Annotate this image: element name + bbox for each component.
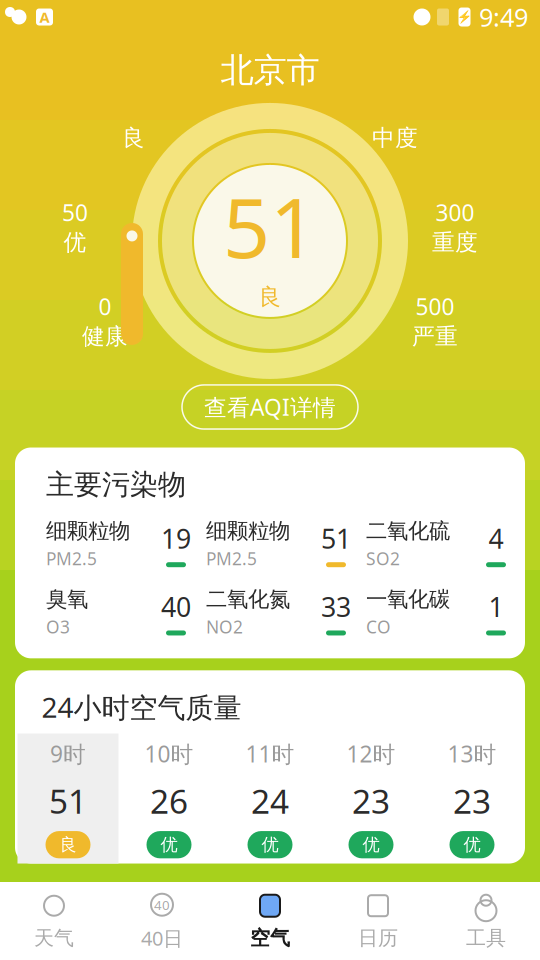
staticText: 26	[150, 779, 188, 823]
staticText: 主要污染物	[46, 467, 186, 502]
staticText: 优	[261, 834, 278, 855]
staticText: CO	[366, 615, 391, 638]
staticText: 空气	[250, 926, 290, 950]
staticText: 优	[63, 229, 86, 256]
staticText: 0	[98, 291, 111, 322]
staticText: 一氧化碳	[366, 586, 450, 612]
staticText: 51	[223, 171, 317, 281]
staticText: 24	[251, 779, 289, 823]
staticText: 良	[122, 124, 145, 152]
staticText: 优	[160, 834, 177, 855]
staticText: 10时	[144, 739, 193, 769]
staticText: ⚡	[457, 10, 472, 24]
staticText: 51	[321, 521, 351, 556]
button[interactable]: 工具	[432, 884, 540, 958]
staticText: 良	[258, 283, 281, 311]
staticText: 良	[59, 834, 76, 855]
staticText: 查看AQI详情	[204, 392, 336, 422]
button[interactable]: 天气	[0, 884, 108, 958]
staticText: 9:49	[479, 0, 528, 34]
staticText: 300	[435, 197, 474, 228]
staticText: 33	[321, 589, 351, 624]
staticText: 500	[415, 291, 454, 322]
staticText: 细颗粒物	[46, 518, 130, 544]
button[interactable]: 空气	[216, 884, 324, 958]
staticText: A	[39, 7, 49, 27]
staticText: 51	[49, 779, 87, 823]
staticText: 二氧化硫	[366, 518, 450, 544]
staticText: 4	[488, 521, 503, 556]
staticText: O3	[46, 615, 70, 638]
staticText: 11时	[245, 739, 294, 769]
staticText: 23	[453, 779, 491, 823]
staticText: 日历	[358, 926, 398, 950]
staticText: PM2.5	[206, 547, 257, 570]
staticText: PM2.5	[46, 547, 97, 570]
staticText: 重度	[432, 229, 478, 256]
staticText: 12时	[346, 739, 395, 769]
staticText: 健康	[82, 323, 128, 350]
staticText: NO2	[206, 615, 243, 638]
staticText: 优	[362, 834, 379, 855]
staticText: 优	[463, 834, 480, 855]
staticText: 23	[352, 779, 390, 823]
staticText: 24小时空气质量	[41, 688, 241, 725]
staticText: 40	[161, 589, 191, 624]
staticText: 9时	[50, 739, 86, 769]
staticText: 19	[161, 521, 191, 556]
staticText: 严重	[412, 323, 458, 350]
staticText: 天气	[34, 926, 74, 950]
staticText: 二氧化氮	[206, 586, 290, 612]
staticText: 40日	[141, 925, 183, 951]
staticText: 细颗粒物	[206, 518, 290, 544]
staticText: 50	[62, 197, 88, 228]
staticText: SO2	[366, 547, 400, 570]
button[interactable]: 40	[108, 884, 216, 958]
staticText: 工具	[466, 926, 506, 950]
staticText: 中度	[372, 124, 418, 152]
staticText: 北京市	[220, 50, 319, 91]
staticText: 13时	[447, 739, 496, 769]
button[interactable]: 日历	[324, 884, 432, 958]
button[interactable]: 查看AQI详情	[182, 385, 358, 429]
staticText: 1	[488, 589, 503, 624]
staticText: 40	[154, 896, 170, 914]
staticText: 臭氧	[46, 586, 88, 612]
